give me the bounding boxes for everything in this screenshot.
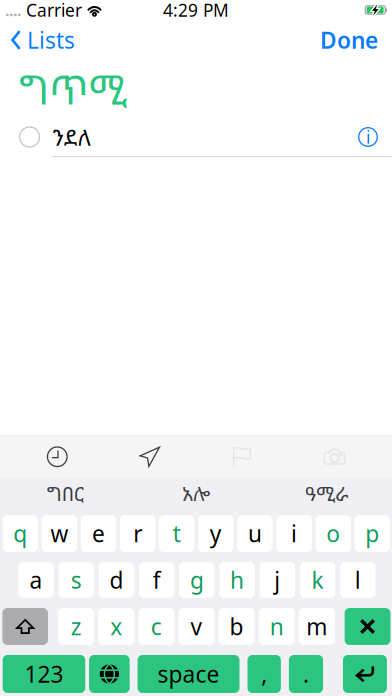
button[interactable]: j [260, 562, 295, 598]
button[interactable]: a [18, 562, 54, 598]
button[interactable]: Camera [288, 448, 381, 466]
staticText: h [230, 565, 244, 595]
staticText: q [13, 518, 27, 548]
staticText: . [303, 659, 309, 689]
staticText: z [71, 611, 82, 641]
staticText: j [274, 565, 280, 595]
button[interactable]: b [218, 608, 255, 645]
staticText: x [110, 611, 122, 641]
staticText: .... [5, 0, 21, 21]
staticText: , [261, 659, 267, 689]
staticText: b [230, 611, 244, 641]
button[interactable]: o [315, 515, 351, 552]
staticText: ዓሚራ [305, 480, 348, 507]
button[interactable]: p [354, 515, 390, 552]
staticText: ግጥሚ [19, 62, 127, 116]
button[interactable]: n [259, 608, 295, 645]
button[interactable]: Remind me [11, 446, 103, 467]
staticText: i [366, 125, 370, 148]
button[interactable]: Done [306, 20, 392, 60]
staticText: l [355, 565, 361, 595]
button[interactable]: Delete [345, 608, 390, 645]
button[interactable]: q [3, 515, 38, 552]
staticText: e [92, 518, 105, 548]
button[interactable]: l [340, 562, 375, 598]
staticText: i [291, 518, 297, 548]
button[interactable]: g [179, 562, 215, 598]
button[interactable]: z [58, 608, 94, 645]
button[interactable]: k [300, 562, 335, 598]
button[interactable]: u [237, 515, 273, 552]
staticText: f [153, 565, 161, 595]
staticText: u [248, 518, 262, 548]
staticText: m [306, 611, 327, 641]
staticText: g [190, 565, 204, 595]
button[interactable]: r [120, 515, 155, 552]
staticText: ንደለ [53, 122, 91, 152]
button[interactable]: 123 [3, 655, 85, 693]
staticText: n [270, 611, 284, 641]
staticText: t [173, 518, 181, 548]
button[interactable]: Shift [2, 608, 48, 645]
staticText: 4:29 PM [163, 0, 229, 21]
button[interactable]: s [59, 562, 94, 598]
staticText: d [109, 565, 123, 595]
button[interactable]: , [247, 655, 281, 693]
button[interactable]: x [98, 608, 134, 645]
staticText: Lists [27, 25, 75, 55]
button[interactable]: Location [103, 446, 196, 467]
button[interactable]: f [139, 562, 174, 598]
button[interactable]: i [276, 515, 312, 552]
staticText: v [190, 611, 202, 641]
button[interactable]: t [159, 515, 194, 552]
button[interactable]: e [81, 515, 116, 552]
button[interactable]: Next keyboard [89, 655, 130, 693]
staticText: Done [320, 25, 378, 55]
button[interactable]: . [289, 655, 323, 693]
staticText: o [326, 518, 340, 548]
button[interactable]: w [42, 515, 77, 552]
staticText: c [151, 611, 162, 641]
staticText: y [210, 518, 222, 548]
button[interactable]: Flag [196, 446, 288, 467]
staticText: r [133, 518, 142, 548]
staticText: Carrier [21, 0, 87, 21]
staticText: a [30, 565, 43, 595]
button[interactable]: Complete [0, 126, 53, 148]
button[interactable]: space [138, 655, 239, 693]
staticText: p [365, 518, 379, 548]
staticText: s [71, 565, 82, 595]
button[interactable]: d [99, 562, 134, 598]
staticText: space [157, 659, 219, 689]
button[interactable]: c [138, 608, 174, 645]
staticText: ግበር [47, 480, 84, 507]
button[interactable]: y [198, 515, 234, 552]
button[interactable]: Lists [0, 20, 85, 60]
staticText: 123 [24, 659, 63, 689]
button[interactable]: m [299, 608, 335, 645]
staticText: k [311, 565, 323, 595]
button[interactable]: Details [358, 127, 392, 147]
button[interactable]: h [219, 562, 255, 598]
button[interactable]: Return [343, 655, 387, 693]
staticText: አሎ [182, 480, 210, 507]
button[interactable]: v [178, 608, 214, 645]
staticText: w [50, 518, 68, 548]
